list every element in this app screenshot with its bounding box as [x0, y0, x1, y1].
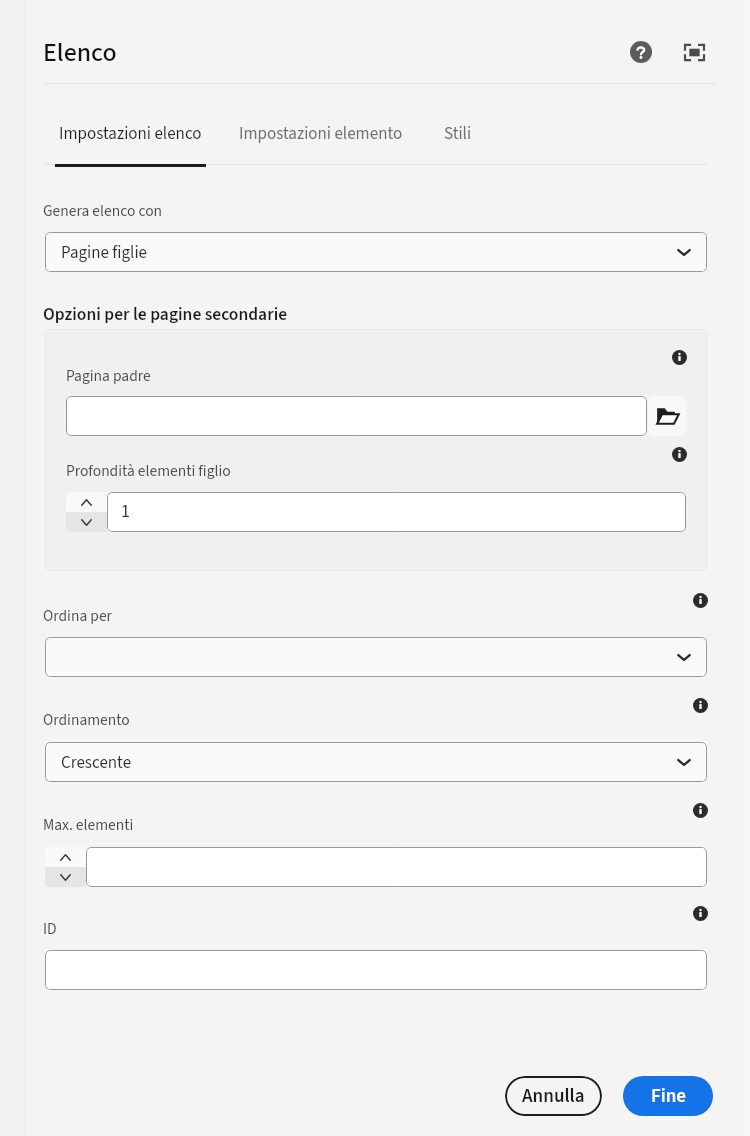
staticText: Impostazioni elenco [59, 122, 202, 146]
button[interactable]: Info [665, 343, 693, 371]
staticText: Profondità elementi figlio [66, 460, 231, 482]
button[interactable]: Increase [45, 847, 86, 867]
button[interactable] [86, 847, 707, 887]
staticText: 1 [121, 499, 130, 525]
staticText: Annulla [522, 1083, 585, 1110]
button[interactable]: Impostazioni elemento [234, 103, 407, 167]
button[interactable]: Decrease [66, 512, 107, 532]
button[interactable]: Select parent [674, 32, 714, 72]
staticText: Pagina padre [66, 365, 151, 387]
button[interactable] [66, 396, 647, 436]
button[interactable]: Info [686, 691, 714, 719]
staticText: Fine [651, 1083, 686, 1110]
button[interactable]: Help [621, 32, 661, 72]
button[interactable]: Info [665, 440, 693, 468]
staticText: Elenco [43, 34, 117, 71]
button[interactable]: Info [686, 586, 714, 614]
staticText: Opzioni per le pagine secondarie [43, 302, 288, 327]
button[interactable]: Pagine figlie [45, 232, 707, 272]
staticText: Crescente [61, 751, 673, 775]
button[interactable]: Increase [66, 492, 107, 512]
staticText: Stili [444, 122, 472, 146]
button[interactable] [45, 637, 707, 677]
button[interactable]: Decrease [45, 867, 86, 887]
staticText: ID [43, 918, 57, 940]
button[interactable] [45, 950, 707, 990]
button[interactable]: 1 [107, 492, 686, 532]
button[interactable]: Annulla [505, 1076, 602, 1116]
staticText: Impostazioni elemento [239, 122, 403, 146]
button[interactable]: Info [686, 796, 714, 824]
staticText: Ordina per [43, 605, 112, 627]
staticText: Max. elementi [43, 814, 134, 836]
button[interactable]: Info [686, 899, 714, 927]
button[interactable]: Stili [437, 103, 478, 167]
button[interactable]: Impostazioni elenco [55, 103, 206, 167]
button[interactable]: Browse [648, 396, 686, 436]
button[interactable]: Crescente [45, 742, 707, 782]
button[interactable]: Fine [623, 1076, 713, 1116]
staticText: Ordinamento [43, 709, 130, 731]
staticText: Pagine figlie [61, 241, 673, 265]
staticText: Genera elenco con [43, 200, 163, 222]
